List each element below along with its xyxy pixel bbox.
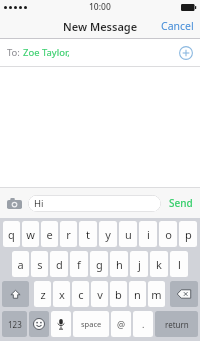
button[interactable]: y xyxy=(99,221,117,247)
staticText: b xyxy=(115,287,122,302)
staticText: y xyxy=(105,227,111,242)
button[interactable]: Numbers xyxy=(2,311,27,337)
staticText: n xyxy=(134,287,141,302)
button[interactable]: Emoji xyxy=(29,311,49,337)
button[interactable]: k xyxy=(150,251,168,277)
button[interactable]: v xyxy=(91,281,108,307)
button[interactable]: o xyxy=(159,221,177,247)
button[interactable]: Backspace xyxy=(170,281,198,307)
staticText: x xyxy=(59,287,65,302)
staticText: d xyxy=(56,257,63,272)
button[interactable]: Camera xyxy=(4,193,24,213)
button[interactable]: s xyxy=(31,251,48,277)
staticText: w xyxy=(26,227,35,242)
button[interactable]: e xyxy=(41,221,58,247)
button[interactable]: d xyxy=(50,251,68,277)
staticText: Zoe Taylor, xyxy=(23,46,70,59)
staticText: o xyxy=(165,227,172,242)
button[interactable]: t xyxy=(79,221,97,247)
staticText: . xyxy=(142,318,145,330)
staticText: p xyxy=(185,227,192,242)
staticText: Hi xyxy=(34,197,44,210)
staticText: s xyxy=(37,257,43,272)
staticText: k xyxy=(156,257,162,272)
button[interactable]: Shift xyxy=(2,281,29,307)
button[interactable]: Dictate xyxy=(51,311,71,337)
button[interactable]: Send xyxy=(166,193,196,213)
staticText: 123 xyxy=(8,319,22,330)
staticText: q xyxy=(8,227,15,242)
button[interactable]: c xyxy=(72,281,89,307)
button[interactable]: space xyxy=(73,311,109,337)
button[interactable]: x xyxy=(53,281,70,307)
staticText: a xyxy=(17,257,24,272)
button[interactable]: b xyxy=(110,281,127,307)
staticText: @ xyxy=(117,318,126,330)
button[interactable]: j xyxy=(130,251,148,277)
staticText: i xyxy=(147,227,150,242)
staticText: space xyxy=(81,319,102,329)
staticText: l xyxy=(178,257,181,272)
button[interactable]: z xyxy=(34,281,51,307)
button[interactable]: return xyxy=(155,311,198,337)
staticText: g xyxy=(96,257,103,272)
button[interactable]: a xyxy=(12,251,29,277)
button[interactable]: f xyxy=(70,251,88,277)
button[interactable]: Hi xyxy=(28,195,161,212)
staticText: New Message xyxy=(63,19,138,34)
button[interactable]: q xyxy=(3,221,20,247)
staticText: h xyxy=(116,257,123,272)
staticText: Cancel xyxy=(161,19,194,33)
staticText: r xyxy=(66,227,71,242)
button[interactable]: g xyxy=(90,251,108,277)
button[interactable]: m xyxy=(148,281,165,307)
staticText: j xyxy=(138,257,141,272)
button[interactable]: u xyxy=(119,221,137,247)
button[interactable]: @ xyxy=(111,311,131,337)
button[interactable]: Add contact xyxy=(177,44,195,62)
button[interactable]: r xyxy=(60,221,77,247)
staticText: v xyxy=(97,287,103,302)
staticText: c xyxy=(78,287,84,302)
staticText: f xyxy=(77,257,81,272)
staticText: u xyxy=(125,227,132,242)
button[interactable]: . xyxy=(133,311,153,337)
button[interactable]: i xyxy=(139,221,157,247)
staticText: To: xyxy=(7,46,20,59)
staticText: return xyxy=(165,319,189,330)
button[interactable]: n xyxy=(129,281,146,307)
button[interactable]: h xyxy=(110,251,128,277)
staticText: Send xyxy=(169,196,193,210)
staticText: t xyxy=(86,227,90,242)
staticText: m xyxy=(151,287,162,302)
staticText: z xyxy=(40,287,46,302)
button[interactable]: l xyxy=(170,251,188,277)
staticText: e xyxy=(46,227,53,242)
button[interactable]: p xyxy=(179,221,197,247)
button[interactable]: w xyxy=(22,221,39,247)
button[interactable]: Cancel xyxy=(155,16,200,36)
staticText: 10:00 xyxy=(89,1,111,13)
